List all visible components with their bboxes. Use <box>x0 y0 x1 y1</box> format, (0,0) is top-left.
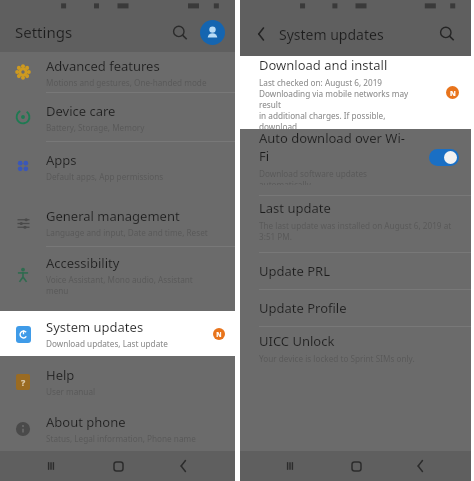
staticText: General management <box>46 207 180 225</box>
staticText: Update PRL <box>259 262 330 280</box>
staticText: Download updates, Last update <box>46 338 168 349</box>
staticText: Auto download over Wi-Fi <box>259 129 407 165</box>
button[interactable]: Download and install <box>240 56 471 129</box>
button[interactable]: System updates <box>0 311 235 356</box>
button[interactable]: About phone <box>0 406 235 451</box>
button[interactable]: Back <box>406 451 436 481</box>
staticText: Update Profile <box>259 299 347 317</box>
staticText: About phone <box>46 413 126 431</box>
staticText: Help <box>46 366 75 384</box>
staticText: User manual <box>46 386 96 397</box>
button[interactable]: Auto download over Wi-Fi <box>240 129 471 185</box>
staticText: N <box>450 88 456 98</box>
staticText: ? <box>21 376 26 388</box>
staticText: Battery, Storage, Memory <box>46 122 145 133</box>
staticText: Download software updates automatically … <box>259 168 407 185</box>
button[interactable]: Auto download over Wi-Fi <box>429 149 459 166</box>
button[interactable]: Home <box>341 451 371 481</box>
staticText: UICC Unlock <box>259 332 335 350</box>
button[interactable]: Search <box>168 21 192 45</box>
staticText: Accessibility <box>46 254 120 272</box>
button[interactable]: Search <box>435 22 459 46</box>
button[interactable]: Back <box>250 22 274 46</box>
staticText: Voice Assistant, Mono audio, Assistant m… <box>46 274 193 296</box>
staticText: Default apps, App permissions <box>46 171 164 182</box>
button[interactable]: ? <box>0 359 235 404</box>
staticText: Settings <box>15 22 73 42</box>
button[interactable]: Apps <box>0 142 235 190</box>
staticText: Language and input, Date and time, Reset <box>46 227 208 238</box>
staticText: Status, Legal information, Phone name <box>46 433 196 444</box>
button[interactable]: Home <box>103 451 133 481</box>
staticText: System updates <box>46 318 144 336</box>
button[interactable]: Back <box>169 451 199 481</box>
button[interactable]: UICC Unlock <box>240 327 471 369</box>
staticText: Motions and gestures, One-handed mode <box>46 77 207 88</box>
staticText: Advanced features <box>46 57 160 75</box>
staticText: Device care <box>46 102 116 120</box>
button[interactable]: Last update <box>240 196 471 244</box>
button[interactable]: Advanced features <box>0 52 235 92</box>
button[interactable]: General management <box>0 199 235 246</box>
staticText: Last checked on: August 6, 2019 Download… <box>259 77 413 129</box>
staticText: Your device is locked to Sprint SIMs onl… <box>259 353 415 364</box>
button[interactable]: Device care <box>0 93 235 141</box>
button[interactable]: Accessibility <box>0 247 235 302</box>
button[interactable]: Recents <box>36 451 66 481</box>
staticText: Apps <box>46 151 77 169</box>
staticText: System updates <box>279 25 384 44</box>
button[interactable]: Update PRL <box>240 253 471 289</box>
staticText: Last update <box>259 199 331 217</box>
staticText: Download and install <box>259 56 388 74</box>
button[interactable]: Recents <box>275 451 305 481</box>
button[interactable]: Update Profile <box>240 290 471 326</box>
staticText: N <box>216 330 222 339</box>
staticText: The last update was installed on August … <box>259 220 452 242</box>
button[interactable]: Account <box>200 20 225 45</box>
